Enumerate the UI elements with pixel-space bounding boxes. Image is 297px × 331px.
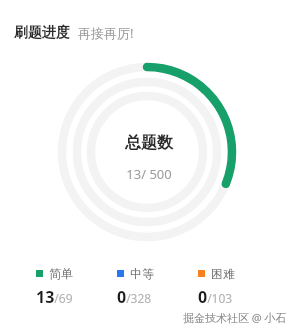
button[interactable]: 刷题进度: [14, 24, 134, 42]
staticText: 中等: [130, 266, 154, 281]
staticText: 0/103: [198, 286, 233, 308]
staticText: 困难: [211, 266, 235, 281]
button[interactable]: 困难: [198, 266, 279, 308]
staticText: 刷题进度: [14, 24, 70, 42]
staticText: 13/ 500: [126, 165, 172, 183]
staticText: 13/69: [36, 286, 73, 308]
staticText: 掘金技术社区 @ 小石: [183, 310, 287, 325]
staticText: 再接再厉!: [78, 24, 134, 42]
staticText: 总题数: [125, 133, 173, 153]
staticText: 简单: [49, 266, 73, 281]
button[interactable]: 中等: [117, 266, 198, 308]
button[interactable]: 简单: [36, 266, 117, 308]
button[interactable]: 总题数: [79, 133, 219, 183]
staticText: 0/328: [117, 286, 152, 308]
